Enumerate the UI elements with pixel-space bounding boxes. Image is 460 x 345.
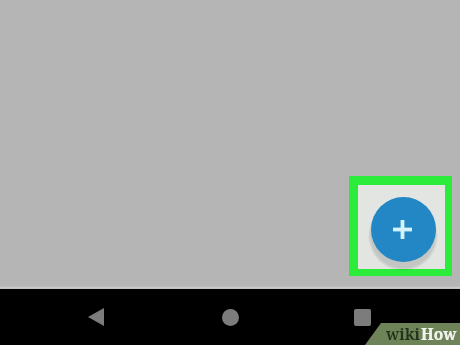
button[interactable]: Recent apps	[332, 289, 392, 345]
staticText: How	[421, 323, 457, 344]
button[interactable]: Back	[66, 289, 126, 345]
button[interactable]: Add	[371, 197, 436, 262]
button[interactable]: Home	[200, 289, 260, 345]
staticText: wiki	[386, 323, 421, 344]
